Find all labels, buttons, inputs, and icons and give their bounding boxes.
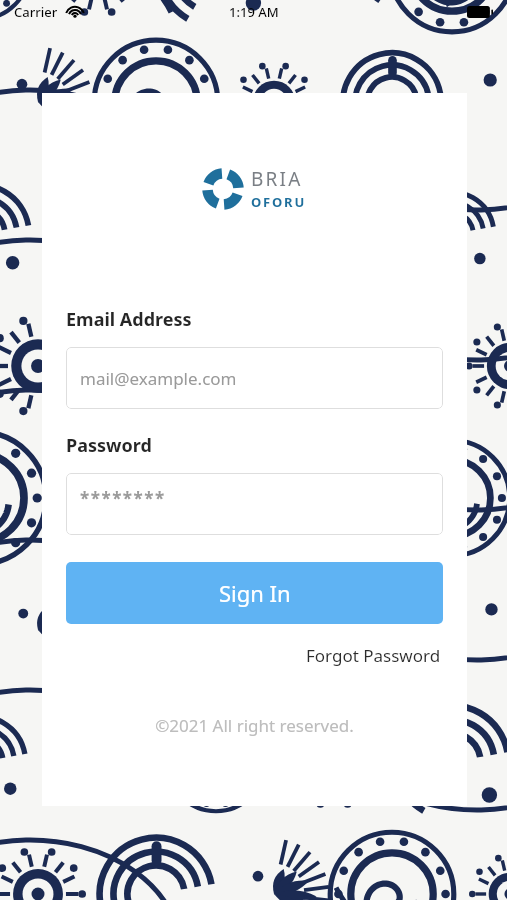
staticText: BRIA — [251, 166, 303, 192]
button[interactable]: Forgot Password — [304, 640, 443, 671]
staticText: Carrier — [14, 3, 58, 21]
staticText: ******** — [80, 487, 166, 510]
button[interactable]: Email Address field — [66, 347, 443, 409]
staticText: mail@example.com — [80, 367, 237, 390]
staticText: Forgot Password — [306, 644, 441, 667]
button[interactable]: Sign In — [66, 562, 443, 624]
staticText: Password — [66, 433, 152, 458]
staticText: ©2021 All right reserved. — [66, 714, 443, 737]
staticText: Email Address — [66, 307, 192, 332]
staticText: 1:19 AM — [229, 3, 279, 21]
staticText: Sign In — [219, 578, 291, 608]
staticText: OFORU — [251, 193, 307, 211]
button[interactable]: Password field — [66, 473, 443, 535]
